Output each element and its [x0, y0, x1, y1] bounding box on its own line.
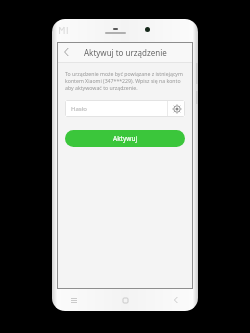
- button[interactable]: Back: [168, 292, 184, 308]
- staticText: Aktywuj: [113, 134, 138, 143]
- button[interactable]: Recent apps: [66, 292, 82, 308]
- button[interactable]: Hasło: [65, 100, 167, 117]
- button[interactable]: Home: [117, 292, 133, 308]
- staticText: To urządzenie może być powiązane z istni…: [65, 70, 185, 91]
- staticText: Hasło: [71, 105, 87, 113]
- button[interactable]: Aktywuj: [65, 130, 185, 147]
- button[interactable]: Show password: [168, 100, 185, 117]
- button[interactable]: Back: [57, 42, 75, 62]
- staticText: Aktywuj to urządzenie: [84, 47, 167, 58]
